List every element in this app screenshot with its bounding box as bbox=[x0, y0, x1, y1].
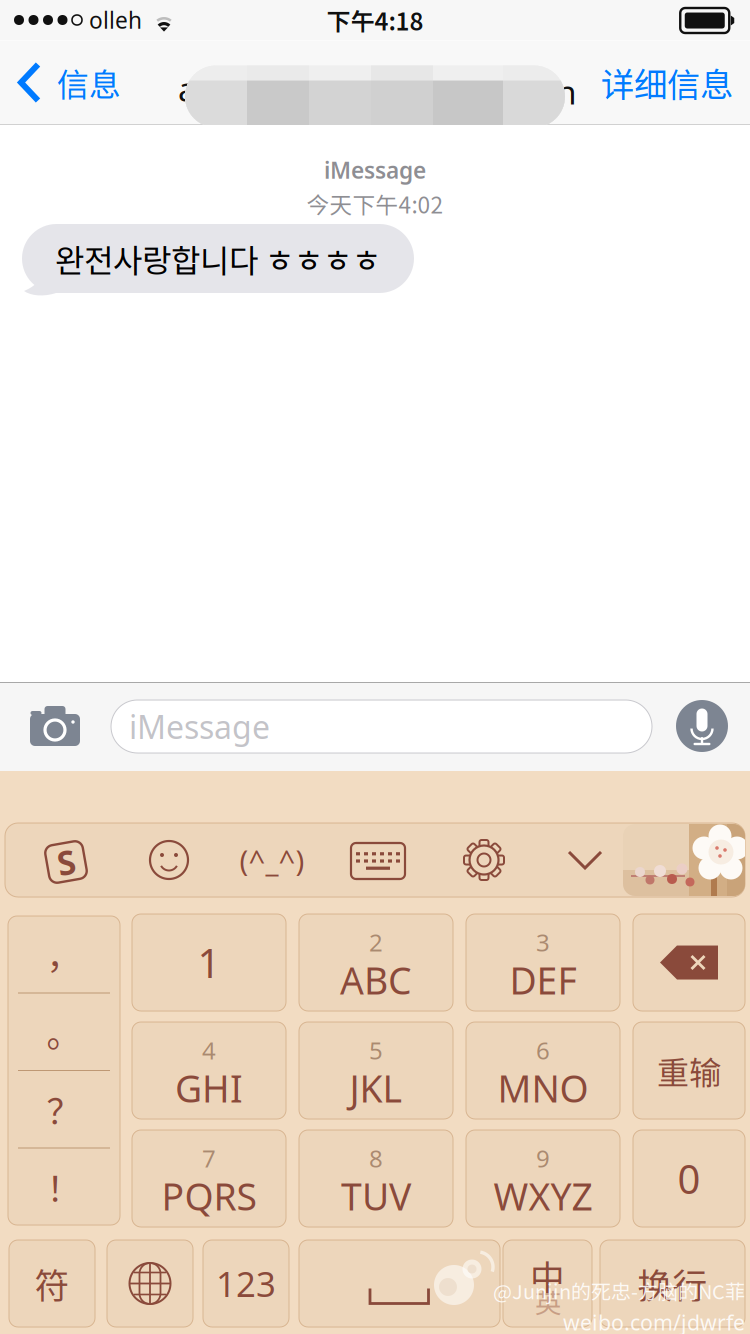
button[interactable]: 符 bbox=[9, 1240, 95, 1327]
staticText: 5 bbox=[369, 1034, 383, 1066]
button[interactable]: 0 bbox=[633, 1130, 745, 1227]
staticText: TUV bbox=[341, 1171, 411, 1221]
staticText: 换行 bbox=[637, 1258, 707, 1309]
staticText: n bbox=[556, 69, 577, 114]
staticText: 信息 bbox=[57, 59, 121, 106]
staticText: 2 bbox=[369, 926, 383, 958]
button[interactable]: 7 bbox=[132, 1130, 286, 1227]
button[interactable]: 详细信息 bbox=[586, 40, 748, 124]
staticText: @Junjin的死忠-方脑的NC菲 bbox=[493, 1276, 745, 1305]
button[interactable]: Keyboard theme bbox=[623, 824, 745, 896]
button[interactable]: 换行 bbox=[600, 1240, 745, 1327]
button[interactable]: 5 bbox=[299, 1022, 453, 1119]
staticText: 中 bbox=[530, 1250, 565, 1301]
button[interactable]: Punctuation bbox=[8, 916, 120, 1225]
button[interactable]: 1 bbox=[132, 914, 286, 1011]
staticText: DEF bbox=[509, 955, 576, 1005]
staticText: PQRS bbox=[161, 1171, 256, 1221]
staticText: iMessage bbox=[129, 705, 270, 748]
staticText: ！ bbox=[46, 1162, 81, 1212]
staticText: 8 bbox=[369, 1142, 383, 1174]
button[interactable]: iMessage bbox=[111, 700, 652, 753]
button[interactable]: 123 bbox=[203, 1240, 289, 1327]
staticText: GHI bbox=[175, 1063, 243, 1113]
staticText: 符 bbox=[34, 1258, 69, 1309]
button[interactable]: Switch keyboard language bbox=[107, 1240, 193, 1327]
button[interactable]: Collapse keyboard bbox=[555, 834, 615, 886]
staticText: 重输 bbox=[657, 1047, 721, 1094]
staticText: 완전사랑합니다 ㅎㅎㅎㅎ bbox=[55, 235, 381, 282]
staticText: 下午4:18 bbox=[326, 3, 423, 37]
button[interactable]: 重输 bbox=[633, 1022, 745, 1119]
button[interactable]: Sogou input method bbox=[43, 839, 89, 885]
staticText: ， bbox=[46, 929, 81, 979]
button[interactable]: 3 bbox=[466, 914, 620, 1011]
staticText: 123 bbox=[216, 1260, 276, 1306]
button[interactable]: Space bbox=[299, 1240, 500, 1327]
staticText: 。 bbox=[46, 1007, 81, 1057]
staticText: 英 bbox=[535, 1282, 562, 1321]
button[interactable]: Settings bbox=[462, 838, 506, 882]
staticText: 0 bbox=[677, 1152, 700, 1205]
staticText: 3 bbox=[536, 926, 550, 958]
staticText: 今天下午4:02 bbox=[306, 187, 443, 220]
button[interactable]: 6 bbox=[466, 1022, 620, 1119]
staticText: ？ bbox=[46, 1084, 81, 1134]
staticText: MNO bbox=[497, 1063, 588, 1113]
button[interactable]: Chinese English toggle bbox=[503, 1240, 592, 1327]
button[interactable]: Delete bbox=[633, 914, 745, 1011]
staticText: JKL bbox=[349, 1063, 402, 1113]
button[interactable]: Dictate bbox=[676, 700, 728, 752]
staticText: S bbox=[57, 840, 75, 884]
button[interactable]: Keyboard layout bbox=[350, 842, 406, 880]
staticText: ABC bbox=[340, 955, 412, 1005]
button[interactable]: 信息 bbox=[0, 40, 135, 124]
staticText: (^_^) bbox=[239, 840, 304, 879]
button[interactable]: 8 bbox=[299, 1130, 453, 1227]
staticText: weibo.com/jdwrfe bbox=[563, 1308, 745, 1334]
staticText: 9 bbox=[536, 1142, 550, 1174]
button[interactable]: Emoji bbox=[148, 839, 190, 881]
staticText: 详细信息 bbox=[601, 58, 733, 107]
button[interactable]: Kaomoji bbox=[224, 834, 320, 886]
button[interactable]: 2 bbox=[299, 914, 453, 1011]
staticText: olleh bbox=[89, 5, 142, 35]
button[interactable]: 9 bbox=[466, 1130, 620, 1227]
button[interactable]: Camera bbox=[29, 707, 81, 747]
staticText: 6 bbox=[536, 1034, 550, 1066]
button[interactable]: 4 bbox=[132, 1022, 286, 1119]
staticText: 1 bbox=[197, 936, 220, 989]
staticText: WXYZ bbox=[493, 1171, 592, 1221]
staticText: a bbox=[178, 66, 197, 111]
staticText: 4 bbox=[202, 1034, 216, 1066]
staticText: 7 bbox=[202, 1142, 216, 1174]
staticText: iMessage bbox=[324, 155, 426, 185]
